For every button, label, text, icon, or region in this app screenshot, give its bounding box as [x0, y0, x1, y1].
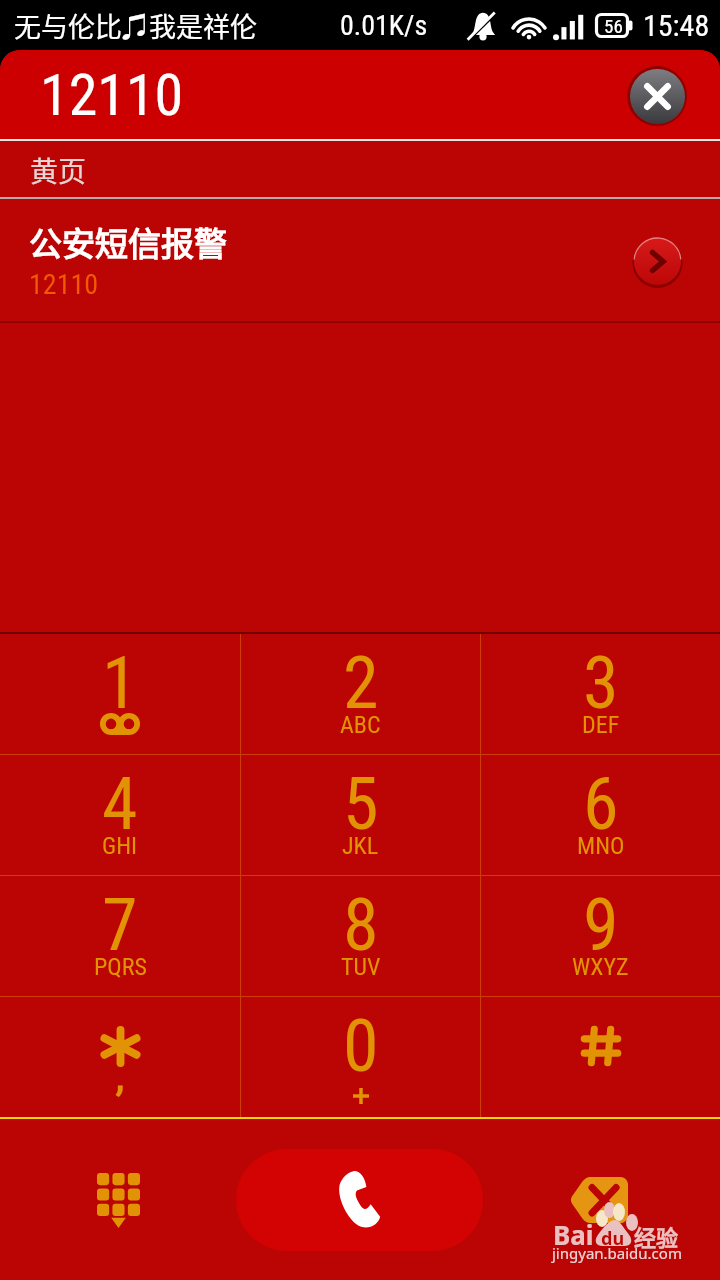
button[interactable]: 4: [0, 755, 240, 875]
staticText: 1: [102, 641, 138, 725]
staticText: WXYZ: [572, 953, 629, 981]
staticText: 12110: [29, 268, 99, 301]
button[interactable]: 6: [481, 755, 720, 875]
staticText: 0: [343, 1004, 379, 1088]
button[interactable]: 2: [241, 634, 480, 754]
staticText: GHI: [102, 832, 138, 860]
button[interactable]: 7: [0, 876, 240, 996]
staticText: jingyan.baidu.com: [552, 1243, 682, 1263]
staticText: 黄页: [30, 150, 87, 191]
staticText: 56: [604, 15, 623, 37]
staticText: 4: [102, 762, 138, 846]
button[interactable]: Hide keypad: [0, 1119, 236, 1280]
staticText: ABC: [340, 711, 381, 739]
staticText: PQRS: [94, 953, 147, 981]
staticText: du: [601, 1226, 625, 1251]
button[interactable]: 1: [0, 634, 240, 754]
staticText: 公安短信报警: [29, 218, 227, 266]
button[interactable]: [481, 997, 720, 1117]
button[interactable]: Delete: [483, 1119, 720, 1280]
staticText: DEF: [582, 711, 620, 739]
button[interactable]: 3: [481, 634, 720, 754]
staticText: Bai: [553, 1217, 594, 1252]
staticText: 3: [583, 641, 619, 725]
staticText: 12110: [40, 61, 184, 129]
staticText: ,: [116, 1053, 124, 1100]
button[interactable]: Call: [236, 1149, 483, 1251]
button[interactable]: 9: [481, 876, 720, 996]
staticText: 8: [343, 883, 379, 967]
button[interactable]: 8: [241, 876, 480, 996]
staticText: 6: [583, 762, 619, 846]
staticText: 5: [343, 762, 379, 846]
button[interactable]: 公安短信报警: [0, 199, 720, 323]
staticText: 经验: [634, 1220, 679, 1252]
button[interactable]: Clear: [630, 69, 685, 124]
staticText: 7: [102, 883, 138, 967]
staticText: 2: [343, 641, 379, 725]
staticText: MNO: [577, 832, 625, 860]
staticText: 9: [583, 883, 619, 967]
staticText: 无与伦比♫我是祥伦: [14, 6, 257, 45]
staticText: 0.01K/s: [340, 9, 428, 42]
button[interactable]: 5: [241, 755, 480, 875]
button[interactable]: 0: [241, 997, 480, 1117]
staticText: TUV: [341, 953, 381, 981]
button[interactable]: Open contact: [632, 236, 683, 287]
staticText: JKL: [342, 832, 379, 860]
button[interactable]: ,: [0, 997, 240, 1117]
staticText: 15:48: [643, 8, 710, 43]
